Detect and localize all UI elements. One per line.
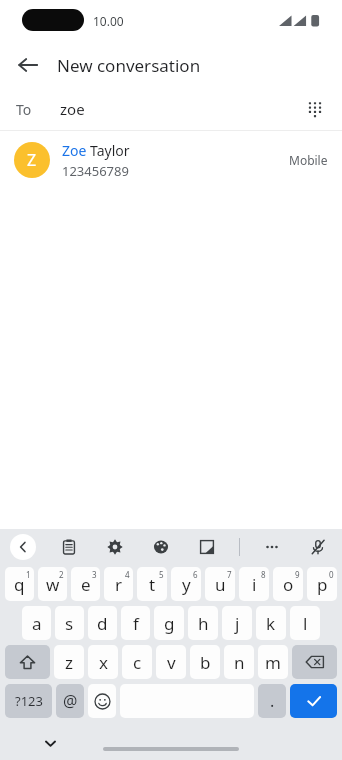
button[interactable]: r (104, 567, 133, 601)
button[interactable]: More (258, 533, 286, 561)
staticText: 123456789 (62, 162, 129, 180)
button[interactable]: Theme (147, 533, 175, 561)
button[interactable]: e (71, 567, 100, 601)
staticText: ?123 (15, 692, 43, 710)
button[interactable]: @ (56, 684, 84, 718)
staticText: n (234, 651, 245, 674)
staticText: zoe (60, 99, 85, 119)
staticText: l (303, 612, 308, 635)
button[interactable]: j (222, 606, 252, 640)
button[interactable]: q (5, 567, 34, 601)
staticText: 1 (26, 569, 31, 580)
button[interactable]: Collapse toolbar (10, 534, 36, 560)
staticText: r (115, 573, 123, 596)
staticText: 9 (295, 569, 300, 580)
staticText: 8 (261, 569, 266, 580)
staticText: u (215, 573, 226, 596)
button[interactable]: v (156, 645, 186, 679)
button[interactable]: n (224, 645, 254, 679)
staticText: p (317, 573, 328, 596)
staticText: c (133, 651, 142, 674)
staticText: s (65, 612, 74, 635)
button[interactable]: f (121, 606, 150, 640)
staticText: d (97, 612, 108, 635)
button[interactable]: a (22, 606, 51, 640)
button[interactable]: t (137, 567, 167, 601)
staticText: b (200, 651, 211, 674)
button[interactable]: g (154, 606, 184, 640)
staticText: x (99, 651, 108, 674)
button[interactable]: Dialpad (296, 90, 334, 128)
button[interactable]: Emoji (88, 684, 116, 718)
staticText: z (65, 651, 73, 674)
staticText: @ (63, 690, 78, 712)
staticText: f (133, 612, 139, 635)
button[interactable]: h (188, 606, 218, 640)
button[interactable]: i (239, 567, 269, 601)
staticText: 5 (159, 569, 164, 580)
staticText: t (149, 573, 156, 596)
staticText: e (81, 573, 91, 596)
button[interactable]: Z (0, 131, 342, 189)
button[interactable]: y (171, 567, 201, 601)
button[interactable]: Backspace (292, 645, 337, 679)
staticText: y (182, 573, 191, 596)
staticText: 0 (329, 569, 334, 580)
staticText: 3 (92, 569, 97, 580)
staticText: Zoe Taylor (62, 141, 130, 160)
staticText: Mobile (289, 152, 328, 168)
button[interactable]: c (122, 645, 152, 679)
button[interactable]: x (88, 645, 118, 679)
button[interactable]: k (256, 606, 286, 640)
staticText: 10.00 (93, 13, 124, 29)
button[interactable]: d (88, 606, 117, 640)
staticText: . (270, 690, 275, 712)
staticText: w (46, 573, 60, 596)
button[interactable]: w (38, 567, 67, 601)
staticText: 6 (193, 569, 198, 580)
staticText: 4 (125, 569, 130, 580)
button[interactable]: Hide keyboard (36, 729, 64, 757)
staticText: g (164, 612, 175, 635)
button[interactable]: u (205, 567, 235, 601)
button[interactable]: Clipboard (55, 533, 83, 561)
staticText: o (283, 573, 294, 596)
button[interactable]: ?123 (5, 684, 52, 718)
button[interactable]: m (258, 645, 288, 679)
staticText: k (266, 612, 276, 635)
staticText: Z (27, 149, 37, 171)
staticText: j (235, 612, 240, 635)
staticText: i (252, 573, 257, 596)
staticText: 2 (59, 569, 64, 580)
button[interactable]: b (190, 645, 220, 679)
button[interactable]: Resize (193, 533, 221, 561)
button[interactable]: o (273, 567, 303, 601)
button[interactable]: . (258, 684, 286, 718)
staticText: h (198, 612, 209, 635)
staticText: To (16, 100, 32, 119)
staticText: v (167, 651, 176, 674)
staticText: q (14, 573, 25, 596)
button[interactable]: s (55, 606, 84, 640)
staticText: a (32, 612, 42, 635)
button[interactable]: Back (8, 45, 48, 85)
staticText: 7 (227, 569, 232, 580)
button[interactable]: Mic off (304, 533, 332, 561)
button[interactable]: p (307, 567, 337, 601)
button[interactable]: Enter (290, 684, 337, 718)
staticText: New conversation (57, 54, 201, 77)
staticText: m (265, 651, 281, 674)
button[interactable]: l (290, 606, 320, 640)
button[interactable]: Shift (5, 645, 50, 679)
button[interactable]: Settings (101, 533, 129, 561)
button[interactable]: z (54, 645, 84, 679)
